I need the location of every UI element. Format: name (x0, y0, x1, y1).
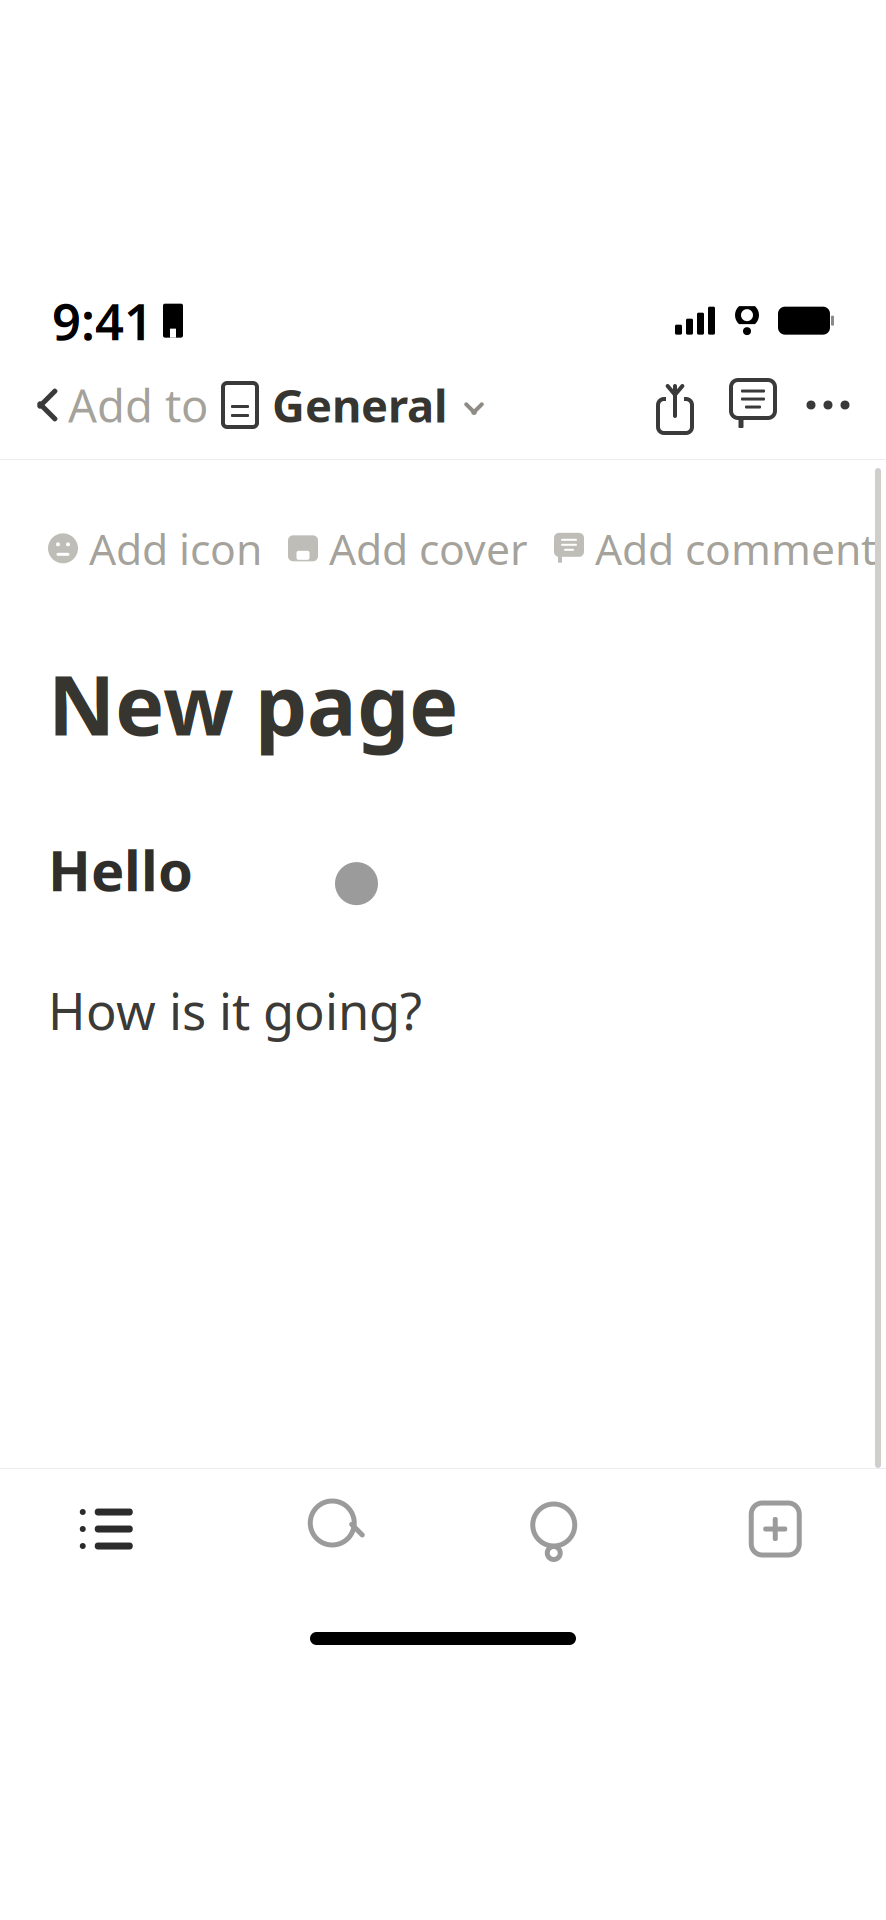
button[interactable]: Add icon (48, 520, 262, 577)
button[interactable]: More options (792, 370, 864, 440)
button[interactable]: New page (664, 1469, 886, 1589)
button[interactable]: Share (636, 370, 714, 440)
staticText: New page (48, 649, 458, 758)
staticText: 9:41 (52, 287, 153, 354)
button[interactable]: Search (221, 1469, 443, 1589)
button[interactable]: Back (14, 370, 68, 440)
staticText: Add cover (329, 520, 528, 577)
staticText: How is it going? (48, 977, 422, 1044)
button[interactable]: Add cover (288, 520, 528, 577)
button[interactable]: Comments (714, 370, 792, 440)
staticText: Add comment (595, 520, 876, 577)
staticText: Add to (68, 375, 208, 435)
button[interactable]: Add comment (554, 520, 876, 577)
staticText: Hello (48, 832, 193, 907)
button[interactable]: Notifications (443, 1469, 664, 1589)
button[interactable]: Pages (0, 1469, 221, 1589)
button[interactable]: Add to (68, 363, 486, 447)
staticText: General (272, 375, 448, 435)
staticText: Add icon (89, 520, 262, 577)
